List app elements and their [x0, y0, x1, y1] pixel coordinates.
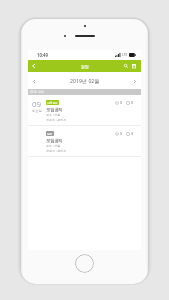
staticText: 장소 : 서울: [46, 113, 61, 117]
staticText: 모임공지: [46, 107, 63, 112]
staticText: 0: [131, 131, 134, 136]
button[interactable]: Comments: [126, 100, 134, 105]
staticText: 0: [120, 100, 123, 105]
staticText: 작성자 : 관리자: [46, 118, 67, 122]
staticText: 09: [32, 98, 42, 109]
staticText: 10:49: [37, 52, 49, 58]
button[interactable]: Like: [115, 131, 123, 136]
staticText: 0: [131, 100, 134, 105]
staticText: 2019년 02월: [70, 77, 100, 84]
button[interactable]: Next month: [129, 74, 141, 88]
button[interactable]: 09: [28, 95, 141, 125]
staticText: 일정: [47, 132, 53, 135]
button[interactable]: Previous month: [28, 74, 40, 88]
button[interactable]: Back: [28, 60, 39, 72]
staticText: 단체일정: [47, 101, 58, 104]
button[interactable]: Search: [122, 60, 130, 72]
button[interactable]: Comments: [126, 131, 134, 136]
staticText: 0: [120, 131, 123, 136]
button[interactable]: Calendar: [130, 60, 138, 72]
staticText: 토요일: [32, 109, 42, 113]
staticText: 모임공지: [46, 138, 63, 143]
button[interactable]: Like: [115, 100, 123, 105]
staticText: LTE: [122, 53, 128, 57]
staticText: 02월 일정: [30, 90, 45, 94]
staticText: 장소 : 서울: [46, 144, 61, 148]
staticText: 일정: [81, 64, 89, 69]
staticText: 작성자 : 관리자: [46, 149, 67, 153]
button[interactable]: 일정: [28, 126, 141, 156]
